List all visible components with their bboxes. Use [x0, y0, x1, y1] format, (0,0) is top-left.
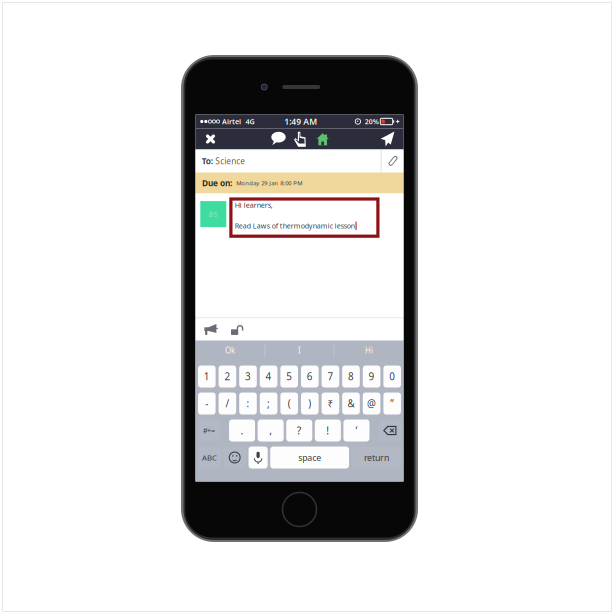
- staticText: 1:49 AM: [284, 116, 317, 127]
- staticText: 3: [245, 370, 251, 383]
- staticText: 1: [204, 370, 210, 383]
- button[interactable]: ;: [260, 392, 277, 414]
- button[interactable]: 7: [322, 365, 339, 387]
- staticText: 6: [307, 370, 313, 383]
- staticText: Ok: [225, 345, 235, 356]
- button[interactable]: space: [270, 446, 349, 468]
- staticText: 4: [266, 370, 272, 383]
- staticText: 4G: [245, 117, 254, 126]
- button[interactable]: ,: [258, 419, 284, 441]
- button[interactable]: :: [239, 392, 257, 414]
- staticText: ,: [269, 423, 272, 438]
- button[interactable]: Ok: [195, 340, 264, 360]
- button[interactable]: Unlock: [224, 318, 250, 340]
- staticText: 9: [369, 370, 375, 383]
- button[interactable]: Hi: [334, 340, 403, 360]
- button[interactable]: Delete: [378, 419, 401, 441]
- button[interactable]: Home: [316, 131, 329, 148]
- button[interactable]: @: [363, 392, 380, 414]
- staticText: 2: [224, 370, 230, 383]
- button[interactable]: 6: [301, 365, 319, 387]
- staticText: #+=: [203, 426, 215, 435]
- staticText: 20%: [365, 117, 379, 126]
- button[interactable]: 9: [363, 365, 380, 387]
- staticText: Hi learners,: [235, 200, 273, 210]
- button[interactable]: &: [342, 392, 360, 414]
- button[interactable]: #+=: [198, 419, 220, 441]
- staticText: Monday 29 Jan 8:00 PM: [236, 179, 302, 187]
- button[interactable]: ₹: [322, 392, 339, 414]
- button[interactable]: I: [265, 340, 334, 360]
- button[interactable]: /: [219, 392, 236, 414]
- button[interactable]: ?: [286, 419, 312, 441]
- staticText: 8: [348, 370, 354, 383]
- staticText: 0: [389, 370, 395, 383]
- staticText: 7: [327, 370, 333, 383]
- button[interactable]: Close: [199, 128, 221, 149]
- staticText: return: [364, 451, 389, 463]
- button[interactable]: 3: [239, 365, 257, 387]
- staticText: ’: [355, 423, 357, 438]
- button[interactable]: 8: [342, 365, 360, 387]
- button[interactable]: Emoji: [223, 446, 246, 468]
- staticText: ;: [267, 397, 270, 410]
- button[interactable]: !: [315, 419, 341, 441]
- button[interactable]: Send: [376, 128, 398, 149]
- staticText: I: [298, 345, 301, 356]
- staticText: &: [347, 397, 354, 410]
- button[interactable]: ’: [343, 419, 369, 441]
- staticText: ABC: [202, 452, 217, 463]
- staticText: :: [246, 397, 249, 410]
- button[interactable]: Raise hand: [294, 131, 307, 148]
- staticText: ?: [297, 423, 302, 438]
- button[interactable]: ”: [383, 392, 401, 414]
- button[interactable]: return: [352, 446, 401, 468]
- staticText: !: [326, 423, 329, 438]
- button[interactable]: Attach: [381, 149, 403, 172]
- button[interactable]: ): [301, 392, 319, 414]
- button[interactable]: 0: [383, 365, 401, 387]
- button[interactable]: ABC: [198, 446, 221, 468]
- button[interactable]: 5: [280, 365, 298, 387]
- button[interactable]: 4: [260, 365, 277, 387]
- button[interactable]: .: [229, 419, 255, 441]
- button[interactable]: 2: [219, 365, 236, 387]
- staticText: -: [205, 397, 208, 410]
- button[interactable]: Announce: [196, 318, 224, 340]
- staticText: .: [240, 423, 243, 438]
- staticText: space: [298, 451, 321, 463]
- staticText: @: [367, 397, 376, 410]
- button[interactable]: 1: [198, 365, 216, 387]
- staticText: BS: [209, 209, 218, 219]
- staticText: ₹: [327, 397, 333, 410]
- staticText: Airtel: [222, 117, 241, 126]
- button[interactable]: -: [198, 392, 216, 414]
- staticText: 5: [286, 370, 292, 383]
- staticText: Science: [215, 155, 245, 167]
- button[interactable]: Dictate: [249, 446, 268, 468]
- button[interactable]: (: [280, 392, 298, 414]
- staticText: Hi: [365, 345, 373, 356]
- button[interactable]: Messages: [271, 131, 286, 148]
- staticText: Due on:: [202, 177, 232, 189]
- staticText: ): [308, 397, 311, 410]
- staticText: Read Laws of thermodynamic lesson: [235, 221, 355, 231]
- staticText: To:: [202, 155, 213, 167]
- staticText: ”: [390, 397, 394, 410]
- staticText: /: [225, 397, 229, 410]
- staticText: (: [288, 397, 291, 410]
